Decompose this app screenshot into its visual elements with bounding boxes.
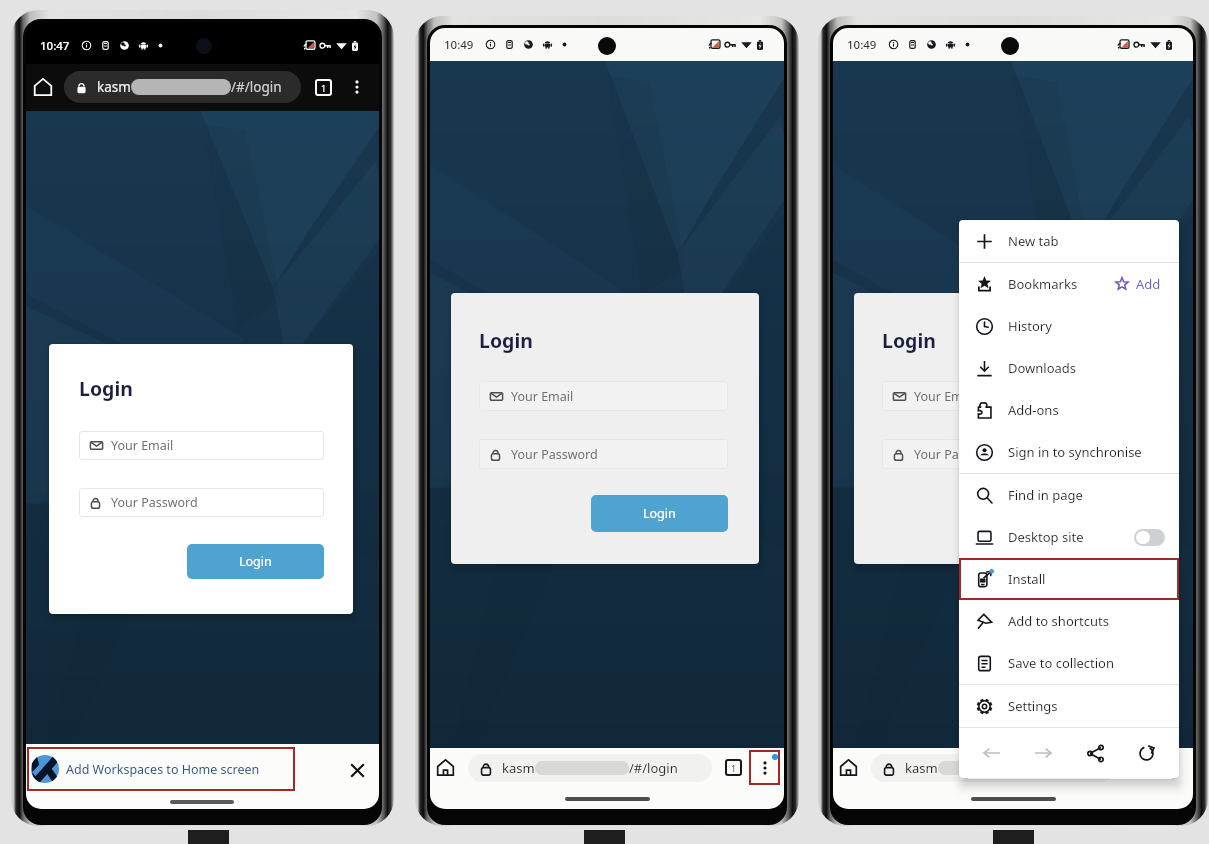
button[interactable]: kasm (64, 71, 301, 103)
button[interactable]: Login (994, 495, 1131, 532)
staticText: kasm (502, 759, 535, 777)
staticText: Login (882, 327, 936, 354)
staticText: Desktop site (1008, 528, 1084, 546)
staticText: Save to collection (1008, 654, 1115, 672)
staticText: Add to shortcuts (1008, 612, 1109, 630)
button[interactable]: Your Password (882, 439, 1131, 469)
staticText: 10:49 (847, 37, 877, 53)
staticText: New tab (1008, 232, 1059, 250)
staticText: Your Password (914, 446, 1001, 463)
staticText: Add-ons (1008, 401, 1059, 419)
staticText: kasm (905, 759, 938, 777)
staticText: 10:47 (40, 38, 70, 54)
button[interactable]: Dismiss (337, 750, 377, 790)
staticText: /#/login (231, 78, 282, 96)
staticText: Login (479, 327, 533, 354)
button[interactable]: kasm (468, 754, 712, 782)
button[interactable]: Home (27, 71, 59, 103)
staticText: Sign in to synchronise (1008, 443, 1142, 461)
button[interactable]: Sign in to synchronise (959, 431, 1179, 473)
staticText: 1 (731, 762, 737, 774)
staticText: Your Password (511, 446, 598, 463)
staticText: /#/login (629, 759, 678, 777)
staticText: Login (79, 375, 133, 402)
staticText: Your Email (111, 437, 174, 454)
button[interactable]: History (959, 305, 1179, 347)
button[interactable]: More options (341, 71, 373, 103)
button[interactable]: Add-ons (959, 389, 1179, 431)
button[interactable]: Save to collection (959, 642, 1179, 684)
button[interactable]: Your Email (79, 431, 324, 460)
staticText: Downloads (1008, 359, 1077, 377)
staticText: Login (643, 505, 676, 522)
staticText: Add Workspaces to Home screen (66, 761, 260, 778)
button[interactable]: More options (749, 750, 780, 785)
button[interactable]: Your Password (479, 439, 728, 469)
button[interactable]: Add (1111, 271, 1165, 297)
staticText: 1 (321, 82, 327, 94)
button[interactable]: Add Workspaces to Home screen (27, 747, 295, 791)
button[interactable]: Login (187, 544, 324, 579)
button[interactable]: Your Password (79, 488, 324, 517)
button[interactable]: Home (833, 752, 863, 782)
staticText: Bookmarks (1008, 275, 1078, 293)
staticText: Add (1136, 275, 1161, 293)
staticText: Settings (1008, 697, 1058, 715)
staticText: Install (1008, 570, 1046, 588)
button[interactable]: Downloads (959, 347, 1179, 389)
button[interactable]: Install (959, 558, 1179, 600)
button[interactable]: Share (1077, 735, 1113, 771)
staticText: Find in page (1008, 486, 1083, 504)
button[interactable]: Reload (1128, 735, 1164, 771)
button[interactable]: Add to shortcuts (959, 600, 1179, 642)
staticText: Your Email (914, 388, 977, 405)
button[interactable]: Forward (1025, 735, 1061, 771)
button[interactable]: Login (591, 495, 728, 532)
button[interactable]: Bookmarks (959, 263, 1179, 305)
button[interactable]: Find in page (959, 474, 1179, 516)
button[interactable]: Your Email (479, 381, 728, 411)
button[interactable]: Back (974, 735, 1010, 771)
button[interactable]: New tab (959, 220, 1179, 262)
button[interactable]: Home (430, 752, 460, 782)
staticText: History (1008, 317, 1052, 335)
button[interactable]: Tabs (718, 752, 748, 782)
staticText: kasm (97, 78, 131, 96)
staticText: Login (239, 553, 272, 570)
button[interactable]: Your Email (882, 381, 1131, 411)
staticText: Your Password (111, 494, 198, 511)
button[interactable]: kasm (871, 754, 1115, 782)
button[interactable] (1134, 529, 1165, 546)
button[interactable]: Settings (959, 685, 1179, 727)
staticText: Your Email (511, 388, 574, 405)
button[interactable]: Desktop site (959, 516, 1179, 558)
staticText: 10:49 (444, 37, 474, 53)
button[interactable]: Tabs (307, 71, 339, 103)
